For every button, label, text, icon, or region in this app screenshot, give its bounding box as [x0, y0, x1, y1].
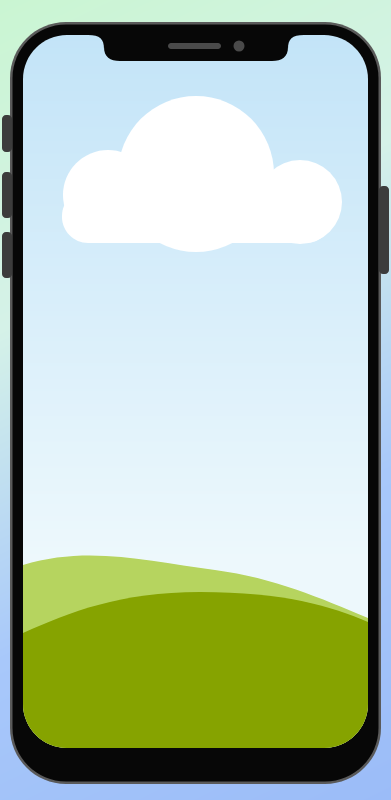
button[interactable]: Phone screen showing cloud and hills wal… [0, 0, 391, 800]
